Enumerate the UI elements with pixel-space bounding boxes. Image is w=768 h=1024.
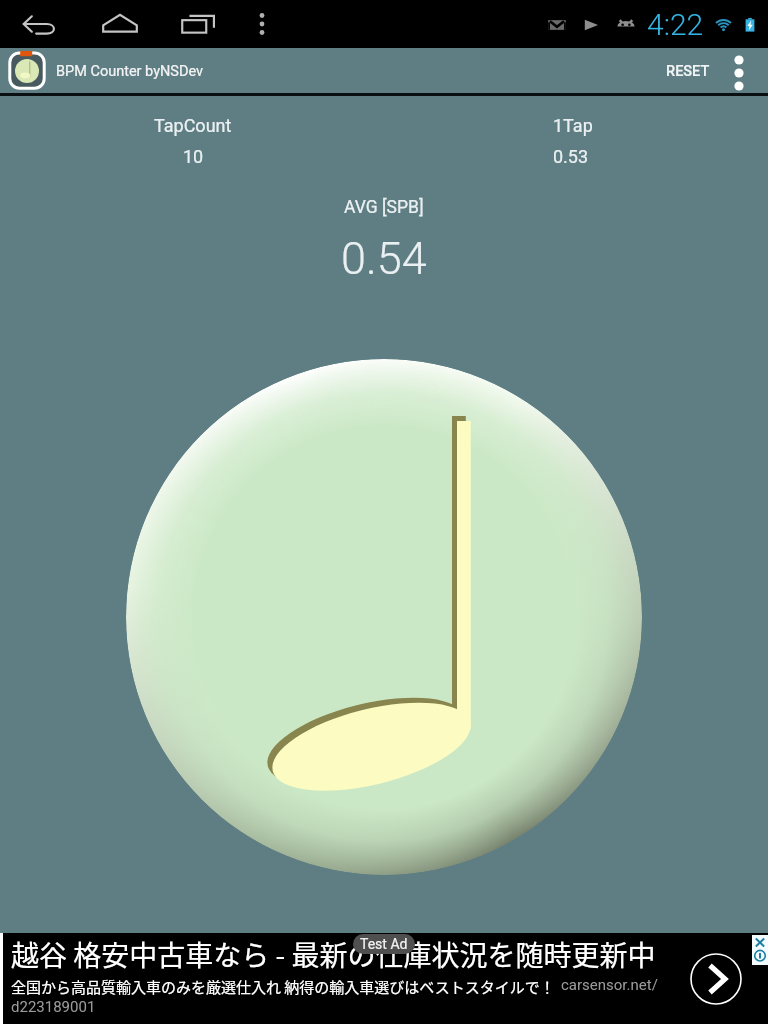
staticText: Test Ad — [360, 936, 408, 952]
button[interactable]: Back — [16, 0, 64, 48]
staticText: d223189001 — [11, 998, 96, 1016]
staticText: carsensor.net/ — [561, 976, 658, 994]
staticText: 1Tap — [553, 115, 593, 136]
staticText: TapCount — [154, 115, 232, 136]
staticText: 0.53 — [553, 146, 589, 167]
button[interactable]: RESET — [654, 48, 710, 94]
staticText: 4:22 — [647, 7, 704, 42]
button[interactable]: Open advertisement — [690, 953, 742, 1005]
staticText: 10 — [183, 146, 204, 167]
staticText: AVG [SPB] — [344, 197, 424, 218]
button[interactable]: Recent apps — [176, 0, 224, 48]
staticText: 全国から高品質輸入車のみを厳選仕入れ 納得の輸入車選びはベストスタイルで！ — [11, 976, 555, 998]
staticText: BPM Counter byNSDev — [56, 63, 204, 80]
button[interactable]: Tap to count BPM — [126, 359, 642, 875]
staticText: 0.54 — [341, 232, 427, 285]
button[interactable]: Home — [96, 0, 144, 48]
staticText: 越谷 格安中古車なら - 最新の仕庫状況を随時更新中 — [11, 934, 656, 975]
button[interactable]: More options — [238, 0, 286, 48]
staticText: RESET — [666, 63, 710, 80]
button[interactable]: More options — [710, 48, 768, 94]
